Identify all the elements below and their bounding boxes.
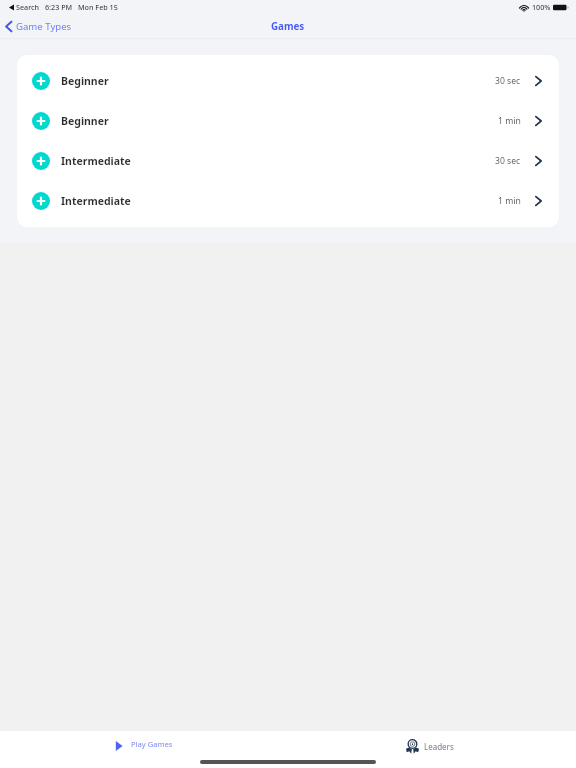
staticText: 30 sec	[495, 155, 521, 167]
staticText: Games	[271, 20, 305, 33]
staticText: 6:23 PM	[45, 2, 73, 12]
button[interactable]: Back to Game Types	[0, 17, 80, 36]
button[interactable]: Add Beginner 1 min game	[32, 112, 50, 130]
button[interactable]: Add Intermediate 30 sec game	[17, 141, 559, 181]
button[interactable]: Add Intermediate 30 sec game	[32, 152, 50, 170]
staticText: Intermediate	[61, 154, 131, 168]
staticText: 1 min	[498, 115, 521, 127]
staticText: Game Types	[16, 20, 72, 33]
staticText: 1 min	[498, 195, 521, 207]
staticText: Leaders	[424, 741, 454, 752]
staticText: Intermediate	[61, 194, 131, 208]
staticText: Beginner	[61, 114, 109, 128]
button[interactable]: Add Beginner 30 sec game	[32, 72, 50, 90]
staticText: Mon Feb 15	[78, 2, 118, 12]
staticText: Beginner	[61, 74, 109, 88]
staticText: Search	[16, 2, 40, 12]
button[interactable]: Add Beginner 30 sec game	[17, 61, 559, 101]
staticText: Play Games	[131, 739, 173, 749]
button[interactable]: Play Games	[0, 731, 288, 757]
button[interactable]: Leaders	[288, 731, 576, 757]
button[interactable]: Add Intermediate 1 min game	[17, 181, 559, 221]
button[interactable]: Add Beginner 1 min game	[17, 101, 559, 141]
button[interactable]: Add Intermediate 1 min game	[32, 192, 50, 210]
staticText: 100%	[532, 2, 551, 12]
staticText: 30 sec	[495, 75, 521, 87]
